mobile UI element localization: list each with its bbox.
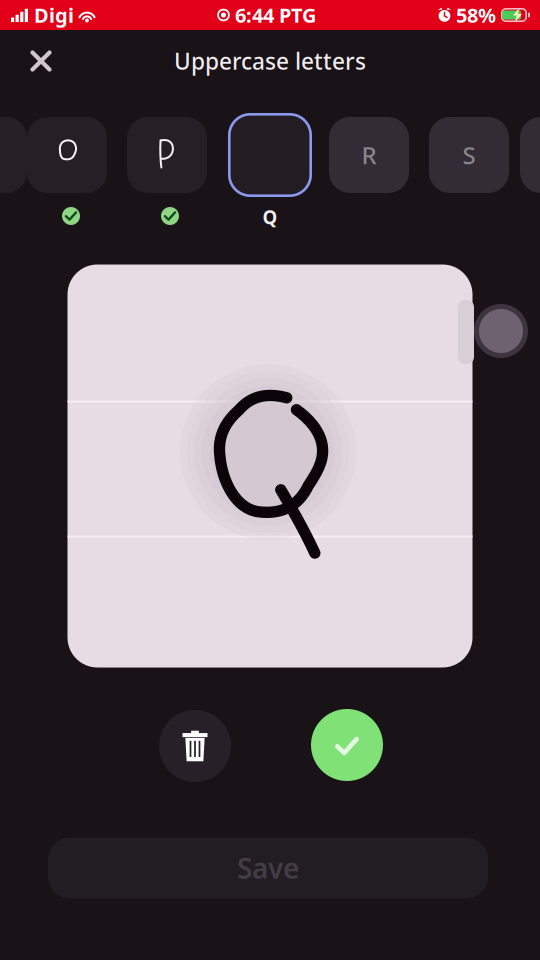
button[interactable]: N — [0, 117, 27, 193]
staticText: Save — [237, 849, 299, 887]
staticText: Q — [262, 205, 277, 229]
button[interactable]: Close — [18, 38, 64, 84]
button[interactable]: T — [520, 117, 540, 193]
button[interactable]: Clear drawing — [159, 710, 231, 782]
button[interactable]: R — [329, 117, 409, 193]
staticText: S — [462, 139, 475, 171]
button[interactable]: Save — [48, 837, 488, 898]
staticText: Digi — [34, 2, 74, 28]
staticText: R — [361, 139, 376, 171]
staticText: 58% — [456, 2, 496, 28]
button[interactable]: Check answer — [311, 709, 383, 781]
button[interactable]: Q, selected — [228, 113, 312, 197]
staticText: 6:44 PTG — [235, 2, 316, 28]
button[interactable]: S — [429, 117, 509, 193]
staticText: Uppercase letters — [174, 46, 366, 76]
button[interactable]: O, completed — [27, 117, 107, 193]
button[interactable]: P, completed — [127, 117, 207, 193]
